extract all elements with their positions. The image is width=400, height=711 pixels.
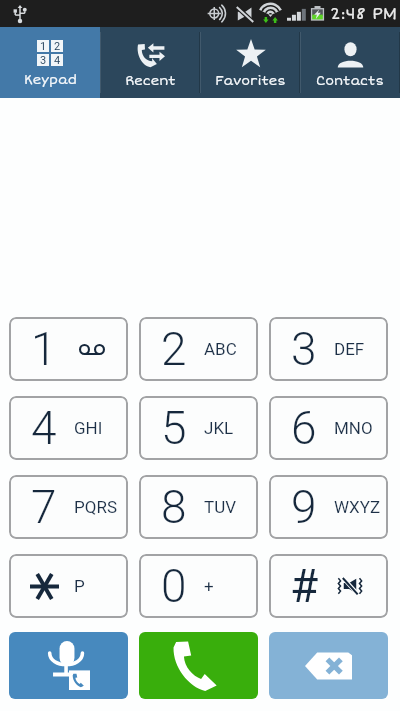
staticText: Contacts: [316, 73, 384, 89]
staticText: 1: [40, 40, 47, 52]
staticText: Favorites: [215, 73, 286, 89]
staticText: 6: [291, 401, 317, 455]
staticText: ABC: [204, 339, 237, 359]
button[interactable]: Backspace: [269, 632, 388, 699]
staticText: Recent: [125, 73, 176, 89]
button[interactable]: 7: [9, 475, 128, 539]
staticText: WXYZ: [334, 497, 381, 517]
staticText: GHI: [74, 418, 103, 438]
button[interactable]: Contacts: [300, 27, 400, 98]
staticText: MNO: [334, 418, 373, 438]
button[interactable]: 6: [269, 396, 388, 460]
staticText: 4: [54, 54, 61, 66]
staticText: 9: [291, 480, 317, 534]
staticText: 3: [291, 322, 317, 376]
staticText: DEF: [334, 339, 365, 359]
staticText: 2: [54, 40, 61, 52]
staticText: TUV: [204, 497, 236, 517]
button[interactable]: Recent: [100, 27, 200, 98]
button[interactable]: 0: [139, 554, 258, 618]
button[interactable]: Voice call: [9, 632, 128, 699]
staticText: 1: [31, 322, 57, 376]
button[interactable]: 4: [9, 396, 128, 460]
button[interactable]: 1: [9, 317, 128, 381]
staticText: JKL: [204, 418, 234, 438]
staticText: 0: [161, 559, 187, 613]
staticText: 2: [161, 322, 187, 376]
staticText: #: [290, 559, 319, 613]
staticText: PQRS: [74, 497, 117, 517]
staticText: 3: [40, 54, 47, 66]
button[interactable]: 3: [269, 317, 388, 381]
button[interactable]: 1: [0, 27, 100, 98]
staticText: Keypad: [24, 72, 77, 88]
staticText: 8: [161, 480, 187, 534]
staticText: +: [204, 576, 214, 596]
button[interactable]: 8: [139, 475, 258, 539]
staticText: 7: [31, 480, 57, 534]
button[interactable]: 2: [139, 317, 258, 381]
staticText: 4: [31, 401, 57, 455]
button[interactable]: Call: [139, 632, 258, 699]
button[interactable]: P: [9, 554, 128, 618]
staticText: 2:48 PM: [330, 3, 397, 24]
staticText: P: [74, 576, 85, 596]
button[interactable]: 9: [269, 475, 388, 539]
button[interactable]: #: [269, 554, 388, 618]
button[interactable]: 5: [139, 396, 258, 460]
button[interactable]: Favorites: [200, 27, 300, 98]
staticText: 5: [161, 401, 187, 455]
